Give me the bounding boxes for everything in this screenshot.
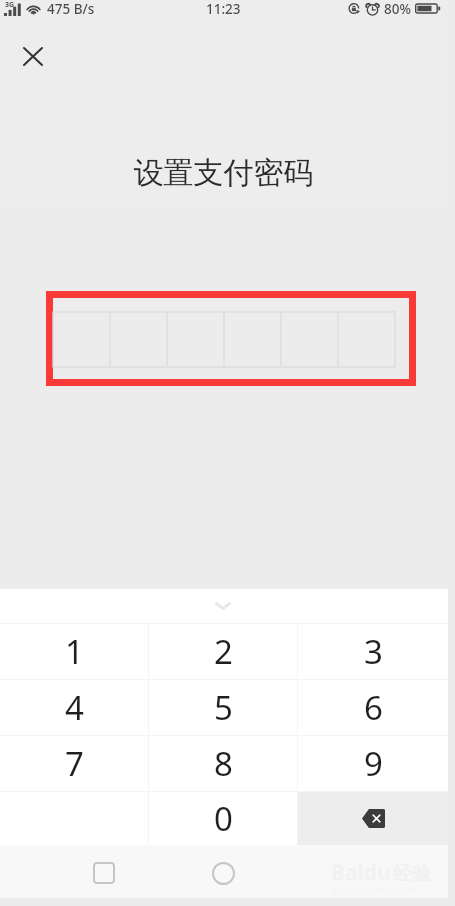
staticText: 80% bbox=[384, 0, 411, 17]
button[interactable]: 7 bbox=[0, 736, 148, 791]
button[interactable]: 0 bbox=[149, 792, 297, 845]
button[interactable]: 3 bbox=[298, 624, 448, 679]
button[interactable]: 6 bbox=[298, 680, 448, 735]
staticText: 3 bbox=[364, 629, 383, 674]
button[interactable]: 8 bbox=[149, 736, 297, 791]
button[interactable]: 5 bbox=[149, 680, 297, 735]
staticText: 7 bbox=[65, 741, 84, 786]
staticText: 0 bbox=[214, 796, 233, 841]
button[interactable]: 1 bbox=[0, 624, 148, 679]
staticText: 9 bbox=[364, 741, 383, 786]
staticText: 2 bbox=[214, 629, 233, 674]
button[interactable]: 2 bbox=[149, 624, 297, 679]
staticText: 4 bbox=[65, 685, 84, 730]
button[interactable]: Close bbox=[10, 33, 54, 77]
button[interactable]: 4 bbox=[0, 680, 148, 735]
staticText: 设置支付密码 bbox=[0, 154, 451, 192]
staticText: 475 B/s bbox=[47, 0, 95, 17]
button[interactable]: 9 bbox=[298, 736, 448, 791]
staticText: 经验 bbox=[393, 862, 431, 886]
button[interactable]: Home bbox=[199, 849, 247, 897]
button[interactable]: Backspace bbox=[298, 792, 448, 845]
staticText: 11:23 bbox=[206, 0, 241, 17]
button[interactable]: Recents bbox=[80, 849, 128, 897]
staticText: 6 bbox=[364, 685, 383, 730]
staticText: 1 bbox=[65, 629, 84, 674]
staticText: 5 bbox=[214, 685, 233, 730]
staticText: 3G bbox=[5, 0, 15, 10]
staticText: 8 bbox=[214, 741, 233, 786]
